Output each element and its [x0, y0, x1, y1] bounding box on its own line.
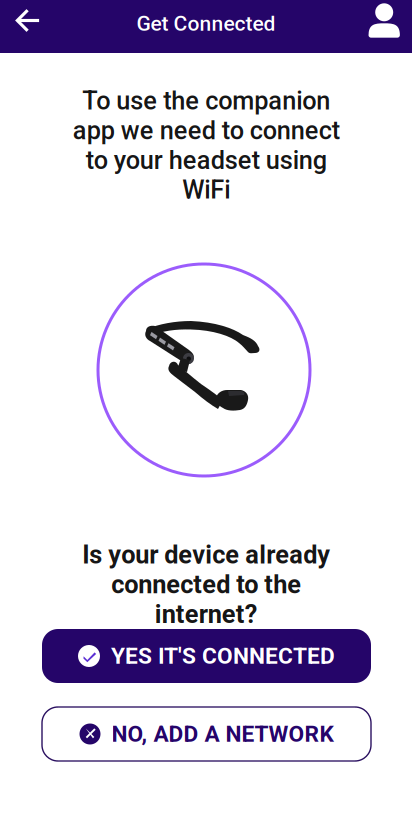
staticText: NO, ADD A NETWORK — [111, 721, 333, 747]
button[interactable]: Back — [1, 0, 53, 53]
button[interactable]: YES IT'S CONNECTED — [42, 629, 371, 683]
staticText: Get Connected — [136, 11, 275, 36]
button[interactable]: Profile — [368, 0, 412, 53]
staticText: YES IT'S CONNECTED — [111, 643, 335, 669]
staticText: To use the companion app we need to conn… — [72, 86, 339, 205]
button[interactable]: NO, ADD A NETWORK — [42, 707, 371, 761]
staticText: Is your device already connected to the … — [82, 540, 330, 629]
